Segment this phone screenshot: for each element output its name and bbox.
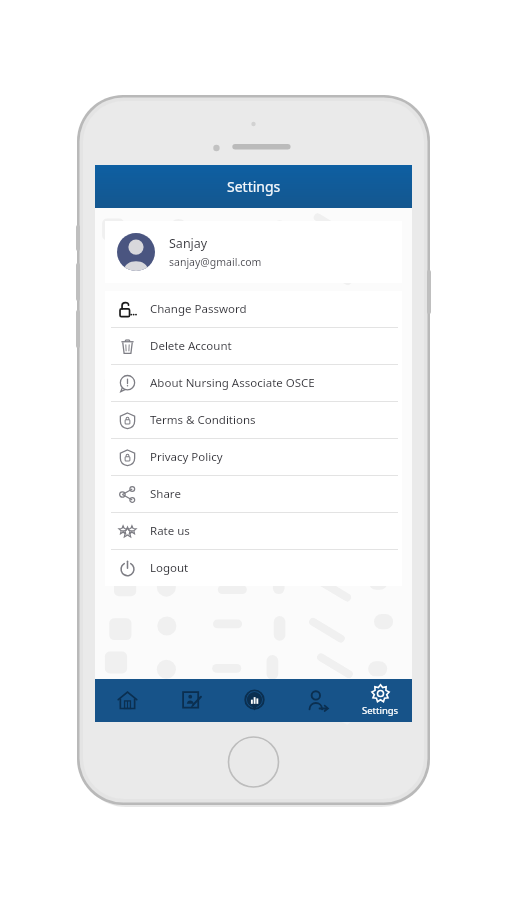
button[interactable]: Settings — [349, 679, 412, 722]
button[interactable]: Share — [105, 476, 402, 512]
button[interactable]: About Nursing Associate OSCE — [105, 365, 402, 401]
button[interactable]: Rate us — [105, 513, 402, 549]
staticText: sanjay@gmail.com — [169, 255, 262, 269]
button[interactable]: Privacy Policy — [105, 439, 402, 475]
staticText: Settings — [362, 704, 399, 717]
button[interactable]: Exam — [159, 679, 223, 722]
staticText: Logout — [150, 560, 189, 576]
staticText: Rate us — [150, 523, 190, 539]
button[interactable]: Profile — [286, 679, 349, 722]
button[interactable]: Terms & Conditions — [105, 402, 402, 438]
staticText: Privacy Policy — [150, 449, 223, 465]
staticText: Share — [150, 486, 181, 502]
button[interactable]: Change Password — [105, 291, 402, 327]
staticText: Terms & Conditions — [150, 412, 256, 428]
button[interactable]: Home — [95, 679, 159, 722]
button[interactable]: Delete Account — [105, 328, 402, 364]
staticText: Settings — [227, 177, 281, 196]
button[interactable]: Stats — [223, 679, 286, 722]
button[interactable]: Sanjay — [105, 221, 402, 283]
staticText: Delete Account — [150, 338, 232, 354]
button[interactable]: Logout — [105, 550, 402, 586]
staticText: Sanjay — [169, 235, 208, 252]
staticText: Change Password — [150, 301, 247, 317]
staticText: About Nursing Associate OSCE — [150, 375, 315, 391]
